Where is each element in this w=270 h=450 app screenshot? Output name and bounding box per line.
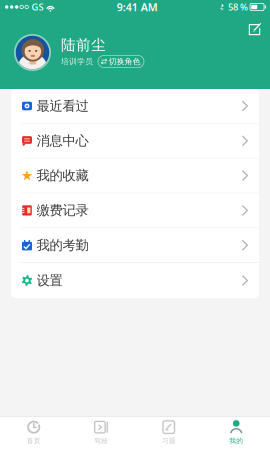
staticText: GS [31,1,43,13]
staticText: 9:41 AM [117,0,158,14]
staticText: 切换角色 [108,57,140,66]
button[interactable]: 消息中心 [11,124,259,159]
button[interactable]: 切换角色 [98,55,144,68]
staticText: 58 % [228,1,248,13]
button[interactable]: 设置 [11,263,259,298]
staticText: 驾校 [94,437,108,445]
button[interactable]: 驾校 [67,417,135,450]
button[interactable]: 我的收藏 [11,159,259,193]
staticText: 我的考勤 [36,237,88,253]
staticText: 最近看过 [36,98,88,114]
staticText: 培训学员 [61,57,93,66]
button[interactable]: Edit profile [242,16,268,39]
button[interactable]: 习题 [135,417,202,450]
staticText: 缴费记录 [36,202,88,219]
button[interactable]: 最近看过 [11,89,259,124]
staticText: 习题 [162,437,176,445]
staticText: 我的 [229,437,243,445]
staticText: 陆前尘 [61,36,106,54]
button[interactable]: 缴费记录 [11,193,259,228]
staticText: 设置 [36,272,62,289]
button[interactable]: 我的 [202,417,270,450]
button[interactable]: 首页 [0,417,67,450]
staticText: 首页 [27,437,41,445]
staticText: 我的收藏 [36,167,88,184]
button[interactable]: 我的考勤 [11,228,259,263]
staticText: 消息中心 [36,133,88,149]
